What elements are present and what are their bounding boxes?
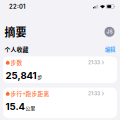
staticText: 个人收藏 [4, 46, 28, 53]
staticText: 摘要 [4, 25, 26, 39]
button[interactable]: Profile [104, 27, 114, 37]
staticText: 21:33 [88, 91, 100, 96]
button[interactable]: 步行+跑步距离 [3, 87, 117, 118]
button[interactable]: 编辑 [105, 46, 115, 52]
staticText: 公里 [25, 105, 35, 111]
staticText: 15.4 [6, 101, 25, 111]
staticText: 22:01 [9, 3, 25, 9]
staticText: 步数 [11, 59, 23, 66]
staticText: 25,841 [6, 70, 37, 80]
button[interactable]: 步数 [3, 56, 117, 83]
staticText: 21:33 [88, 60, 100, 65]
staticText: JS [106, 29, 112, 34]
staticText: 步 [37, 74, 42, 80]
staticText: 步行+跑步距离 [11, 90, 50, 97]
staticText: 编辑 [105, 46, 115, 52]
